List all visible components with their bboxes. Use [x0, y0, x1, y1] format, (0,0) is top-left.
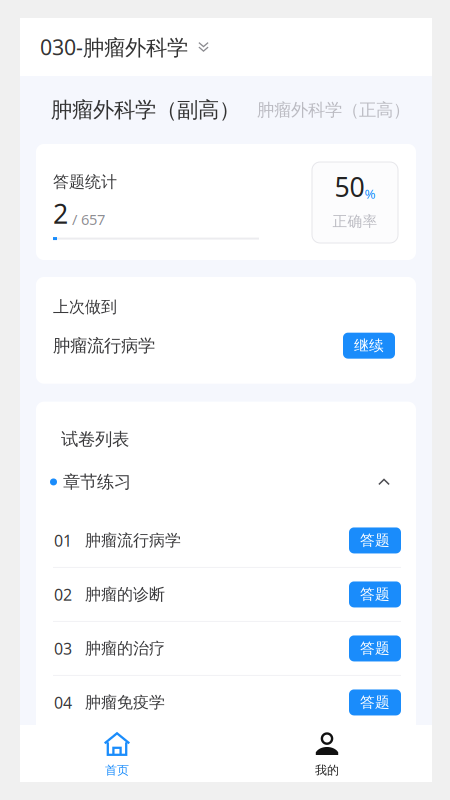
staticText: 答题 — [360, 585, 390, 603]
staticText: 章节练习 — [63, 471, 131, 493]
staticText: 首页 — [105, 763, 129, 778]
staticText: 答题统计 — [53, 172, 117, 192]
button[interactable]: 继续 — [343, 333, 395, 359]
button[interactable]: 章节练习 — [36, 450, 416, 514]
button[interactable]: 首页 — [20, 725, 214, 782]
staticText: 肿瘤流行病学 — [53, 335, 155, 356]
button[interactable]: 030-肿瘤外科学 — [20, 18, 221, 76]
button[interactable]: 肿瘤外科学（正高） — [240, 89, 410, 131]
button[interactable]: 答题 — [349, 635, 401, 661]
staticText: 50 — [334, 169, 364, 204]
button[interactable]: 答题 — [349, 689, 401, 715]
button[interactable]: 答题 — [349, 527, 401, 553]
button[interactable]: 答题 — [349, 581, 401, 607]
staticText: 肿瘤流行病学 — [85, 531, 181, 550]
staticText: 正确率 — [332, 212, 377, 230]
staticText: 上次做到 — [53, 297, 117, 317]
staticText: 肿瘤的治疗 — [85, 639, 165, 658]
staticText: 02 — [54, 584, 72, 605]
staticText: 01 — [54, 530, 72, 551]
staticText: 030-肿瘤外科学 — [40, 33, 188, 61]
staticText: 肿瘤外科学（正高） — [257, 99, 410, 121]
staticText: 我的 — [315, 763, 339, 778]
button[interactable]: 03 — [36, 622, 416, 675]
button[interactable]: 05 — [36, 730, 416, 783]
button[interactable]: 01 — [36, 514, 416, 567]
staticText: 肿瘤免疫学 — [85, 693, 165, 712]
staticText: 2 — [53, 196, 68, 231]
staticText: 肿瘤的预防 — [85, 747, 165, 766]
button[interactable]: 02 — [36, 568, 416, 621]
staticText: 继续 — [354, 337, 384, 355]
staticText: 答题 — [360, 531, 390, 549]
staticText: 试卷列表 — [61, 429, 129, 450]
staticText: 肿瘤的诊断 — [85, 585, 165, 604]
staticText: 肿瘤外科学（副高） — [51, 97, 240, 123]
button[interactable]: 肿瘤外科学（副高） — [20, 87, 240, 133]
staticText: 04 — [54, 692, 72, 713]
staticText: 答题 — [360, 693, 390, 711]
button[interactable]: 我的 — [214, 725, 440, 782]
staticText: % — [364, 185, 375, 202]
staticText: / 657 — [68, 210, 105, 229]
staticText: 答题 — [360, 639, 390, 657]
staticText: 03 — [54, 638, 72, 659]
button[interactable]: 04 — [36, 676, 416, 729]
